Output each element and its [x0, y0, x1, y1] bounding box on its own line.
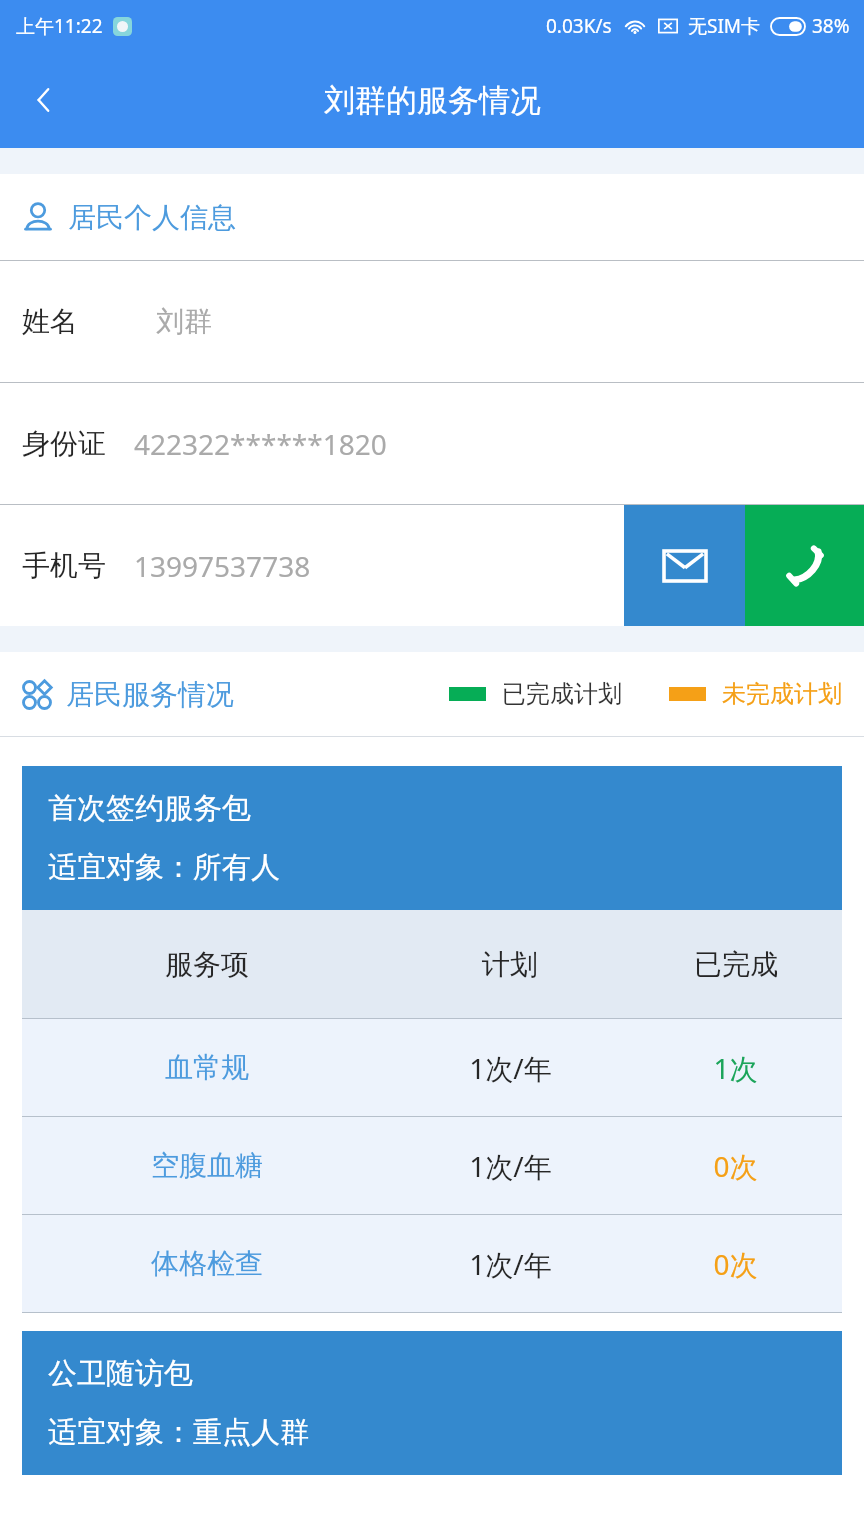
- staticText: 0次: [713, 1245, 758, 1283]
- staticText: 13997537738: [134, 547, 311, 585]
- staticText: 身份证: [22, 426, 106, 461]
- staticText: 公卫随访包: [48, 1355, 193, 1392]
- button[interactable]: Call: [745, 505, 864, 626]
- staticText: 首次签约服务包: [48, 790, 251, 827]
- staticText: 已完成: [694, 947, 778, 982]
- button[interactable]: 居民个人信息: [22, 174, 864, 260]
- button[interactable]: 体格检查: [22, 1215, 842, 1312]
- staticText: 上午11:22: [16, 13, 103, 39]
- staticText: 体格检查: [151, 1246, 263, 1281]
- button[interactable]: 公卫随访包: [22, 1331, 842, 1475]
- button[interactable]: Back: [6, 62, 82, 138]
- staticText: 姓名: [22, 304, 78, 339]
- staticText: 0次: [713, 1147, 758, 1185]
- staticText: 服务项: [165, 947, 249, 982]
- staticText: 38%: [812, 13, 850, 39]
- staticText: 适宜对象：重点人群: [48, 1414, 309, 1451]
- staticText: 手机号: [22, 548, 106, 583]
- button[interactable]: 姓名: [0, 261, 864, 382]
- button[interactable]: Send message: [624, 505, 745, 626]
- button[interactable]: 血常规: [22, 1019, 842, 1116]
- staticText: 空腹血糖: [151, 1148, 263, 1183]
- staticText: 居民个人信息: [68, 200, 236, 235]
- staticText: 计划: [482, 947, 538, 982]
- staticText: 刘群: [156, 304, 212, 339]
- button[interactable]: 身份证: [0, 383, 864, 504]
- staticText: 已完成计划: [502, 679, 622, 709]
- staticText: 刘群的服务情况: [324, 81, 541, 120]
- staticText: 422322******1820: [134, 425, 387, 463]
- staticText: 未完成计划: [722, 679, 842, 709]
- button[interactable]: 首次签约服务包: [22, 766, 842, 910]
- button[interactable]: 空腹血糖: [22, 1117, 842, 1214]
- staticText: 1次/年: [469, 1245, 552, 1283]
- staticText: 1次/年: [469, 1049, 552, 1087]
- staticText: 0.03K/s: [546, 13, 612, 39]
- button[interactable]: 居民服务情况: [22, 677, 234, 712]
- staticText: 1次/年: [469, 1147, 552, 1185]
- staticText: 血常规: [165, 1050, 249, 1085]
- staticText: 1次: [713, 1049, 758, 1087]
- staticText: 适宜对象：所有人: [48, 849, 280, 886]
- staticText: 无SIM卡: [688, 13, 761, 39]
- staticText: 居民服务情况: [66, 677, 234, 712]
